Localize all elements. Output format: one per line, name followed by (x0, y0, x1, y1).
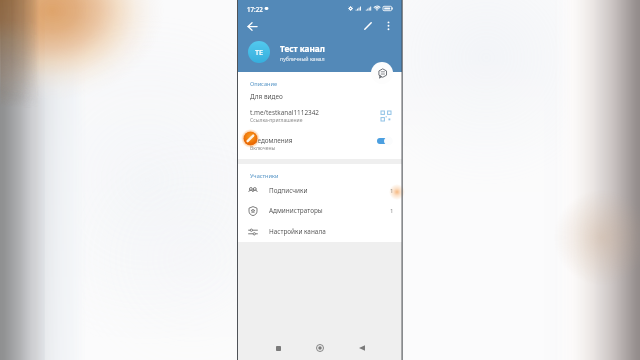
button[interactable]: Подписчики (238, 180, 402, 201)
staticText: 1 (390, 207, 394, 215)
button[interactable]: Back (352, 338, 372, 358)
staticText: Для видео (250, 92, 283, 101)
staticText: Описание (250, 80, 277, 88)
button[interactable]: Channel photo (248, 41, 270, 63)
staticText: Подписчики (269, 186, 308, 195)
button[interactable]: Администраторы (238, 200, 402, 221)
staticText: Ссылка-приглашение (250, 117, 303, 124)
button[interactable]: Уведомления (238, 132, 402, 155)
button[interactable]: Edit (358, 16, 378, 36)
button[interactable]: Back (242, 16, 262, 36)
staticText: Уведомления (250, 136, 293, 145)
staticText: 1 (390, 187, 394, 195)
staticText: Тест канал (280, 43, 325, 54)
button[interactable]: t.me/testkanal1112342 (238, 105, 402, 126)
staticText: ТЕ (255, 47, 264, 57)
button[interactable]: Настройки канала (238, 221, 402, 242)
button[interactable]: More options (378, 16, 398, 36)
button[interactable]: Discussion (371, 62, 393, 84)
staticText: Настройки канала (269, 227, 326, 236)
staticText: t.me/testkanal1112342 (250, 108, 320, 117)
staticText: Включены (250, 145, 276, 152)
staticText: 17:22 (247, 5, 263, 13)
button[interactable]: Home (310, 338, 330, 358)
staticText: Администраторы (269, 206, 323, 215)
staticText: Участники (250, 172, 279, 180)
button[interactable]: Recent apps (268, 338, 288, 358)
staticText: публичный канал (280, 55, 325, 62)
